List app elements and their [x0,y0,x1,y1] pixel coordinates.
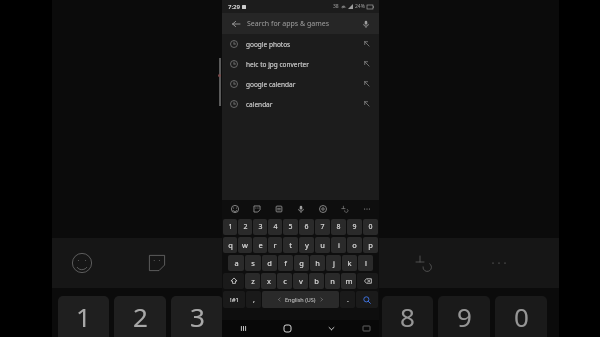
button[interactable]: Shift [223,273,244,289]
staticText: 6 [304,222,309,232]
button[interactable]: w [238,237,252,253]
staticText: z [251,276,255,286]
staticText: b [314,276,319,286]
button[interactable]: a [228,255,244,271]
button[interactable]: Translate [337,201,352,216]
button[interactable]: Insert suggestion [362,59,372,69]
button[interactable]: google calendar [222,74,379,94]
button[interactable]: 1 [223,219,237,235]
button[interactable]: x [261,273,276,289]
staticText: 2 [133,299,148,334]
button[interactable]: !#1 [223,291,245,308]
button[interactable]: n [325,273,340,289]
button[interactable]: k [342,255,357,271]
staticText: s [251,258,255,268]
button[interactable]: 7 [315,219,330,235]
button[interactable]: Recents [222,320,265,337]
button[interactable]: Stickers [249,201,264,216]
button[interactable]: Back [229,17,242,30]
button[interactable]: Insert suggestion [362,99,372,109]
button[interactable]: Back [222,13,379,34]
staticText: w [242,240,248,250]
button[interactable]: z [245,273,260,289]
button[interactable]: u [315,237,330,253]
staticText: r [273,240,277,250]
button[interactable]: l [358,255,373,271]
button[interactable]: q [223,237,237,253]
button[interactable]: Backspace [357,273,378,289]
button[interactable]: f [278,255,293,271]
button[interactable]: s [245,255,261,271]
staticText: 4 [273,222,278,232]
button[interactable]: 5 [283,219,298,235]
staticText: 1 [76,299,91,334]
button[interactable]: c [277,273,292,289]
button[interactable]: m [341,273,356,289]
button[interactable]: Voice search [359,17,372,30]
staticText: 38 [333,3,339,10]
button[interactable]: t [283,237,298,253]
button[interactable]: Home [265,320,309,337]
button[interactable]: calendar [222,94,379,114]
button[interactable]: j [326,255,341,271]
button[interactable]: 0 [363,219,378,235]
button[interactable]: 3 [253,219,267,235]
button[interactable]: , [246,291,261,308]
button[interactable]: p [363,237,378,253]
staticText: h [315,258,320,268]
button[interactable]: 9 [347,219,362,235]
staticText: 3 [258,222,263,232]
button[interactable]: Insert suggestion [362,79,372,89]
staticText: English (US) [285,296,316,303]
button[interactable]: Search [356,291,378,308]
button[interactable]: Switch keyboard [353,320,379,337]
button[interactable]: 4 [268,219,282,235]
button[interactable]: i [331,237,346,253]
button[interactable]: Hide keyboard [309,320,353,337]
staticText: , [253,295,255,305]
staticText: google calendar [246,80,362,89]
button[interactable]: Emoji [227,201,242,216]
button[interactable]: 8 [331,219,346,235]
staticText: 8 [336,222,341,232]
staticText: 1 [228,222,233,232]
staticText: Search for apps & games [247,19,359,29]
button[interactable]: 2 [238,219,252,235]
button[interactable]: Insert suggestion [362,39,372,49]
staticText: x [267,276,271,286]
button[interactable]: e [253,237,267,253]
staticText: d [267,258,272,268]
button[interactable]: v [293,273,308,289]
staticText: 2 [243,222,248,232]
staticText: t [289,240,292,250]
button[interactable]: . [340,291,355,308]
staticText: 8 [400,299,415,334]
staticText: u [320,240,325,250]
button[interactable]: Settings [315,201,330,216]
button[interactable]: heic to jpg converter [222,54,379,74]
button[interactable]: y [299,237,314,253]
button[interactable]: google photos [222,34,379,54]
staticText: o [352,240,357,250]
button[interactable]: Voice input [293,201,308,216]
staticText: . [347,295,349,305]
button[interactable]: r [268,237,282,253]
staticText: n [330,276,335,286]
staticText: l [365,258,367,268]
staticText: 0 [368,222,373,232]
staticText: j [333,258,335,268]
staticText: 9 [352,222,357,232]
button[interactable]: b [309,273,324,289]
staticText: google photos [246,40,362,49]
button[interactable]: Clipboard [271,201,286,216]
button[interactable]: More options [359,201,374,216]
button[interactable]: English (US) [262,291,339,308]
button[interactable]: d [262,255,277,271]
staticText: q [228,240,233,250]
button[interactable]: h [310,255,325,271]
button[interactable]: o [347,237,362,253]
button[interactable]: 6 [299,219,314,235]
staticText: g [299,258,304,268]
staticText: calendar [246,100,362,109]
button[interactable]: g [294,255,309,271]
